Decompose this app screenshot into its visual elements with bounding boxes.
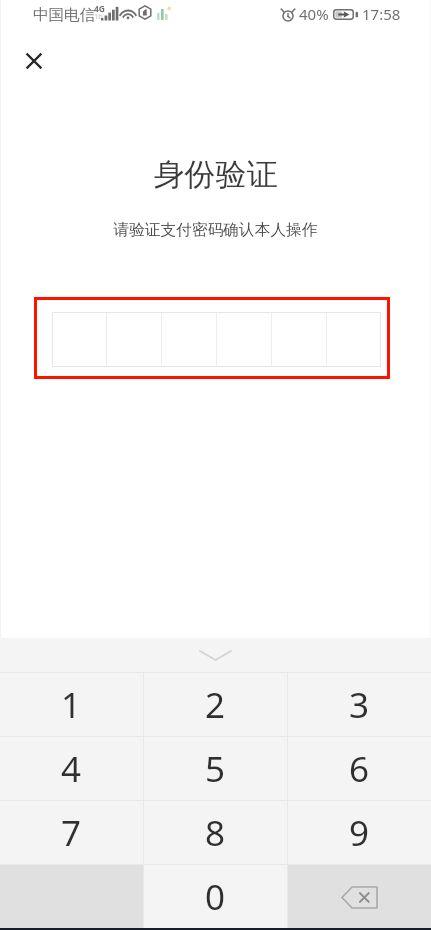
button[interactable]: 1	[0, 673, 143, 736]
staticText: 4G	[94, 3, 106, 15]
staticText: 中国电信	[33, 5, 95, 25]
button[interactable]: 7	[0, 801, 143, 864]
staticText: 2	[205, 681, 226, 729]
button[interactable]: Backspace	[288, 865, 431, 929]
staticText: 6	[349, 745, 370, 793]
staticText: 7	[61, 809, 82, 857]
button[interactable]: Close	[11, 38, 56, 83]
button[interactable]: 6	[288, 737, 431, 800]
staticText: 1b	[94, 11, 103, 21]
button[interactable]: Password input	[52, 312, 381, 367]
staticText: 身份验证	[0, 155, 431, 194]
staticText: 3	[349, 681, 370, 729]
staticText: 9	[349, 809, 370, 857]
staticText: 40%	[299, 4, 329, 24]
button[interactable]: 5	[144, 737, 287, 800]
staticText: 0	[205, 873, 226, 921]
staticText: 17:58	[362, 4, 401, 24]
staticText: 5	[205, 745, 226, 793]
button[interactable]: 8	[144, 801, 287, 864]
button[interactable]: Blank key	[0, 865, 143, 929]
button[interactable]: 3	[288, 673, 431, 736]
staticText: 1	[61, 681, 82, 729]
button[interactable]: 9	[288, 801, 431, 864]
button[interactable]: 4	[0, 737, 143, 800]
staticText: 请验证支付密码确认本人操作	[0, 220, 431, 240]
button[interactable]: 2	[144, 673, 287, 736]
staticText: 8	[205, 809, 226, 857]
button[interactable]: 0	[144, 865, 287, 929]
staticText: 4	[61, 745, 82, 793]
